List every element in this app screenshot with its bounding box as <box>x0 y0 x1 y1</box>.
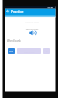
staticText: What is this? <box>0 21 64 24</box>
button[interactable]: one <box>8 48 15 54</box>
staticText: Word bank <box>7 39 21 43</box>
staticText: Tap to play <box>0 27 64 30</box>
button[interactable]: Practice <box>11 9 24 13</box>
staticText: one <box>9 50 14 53</box>
button[interactable]: Play audio <box>28 30 38 37</box>
